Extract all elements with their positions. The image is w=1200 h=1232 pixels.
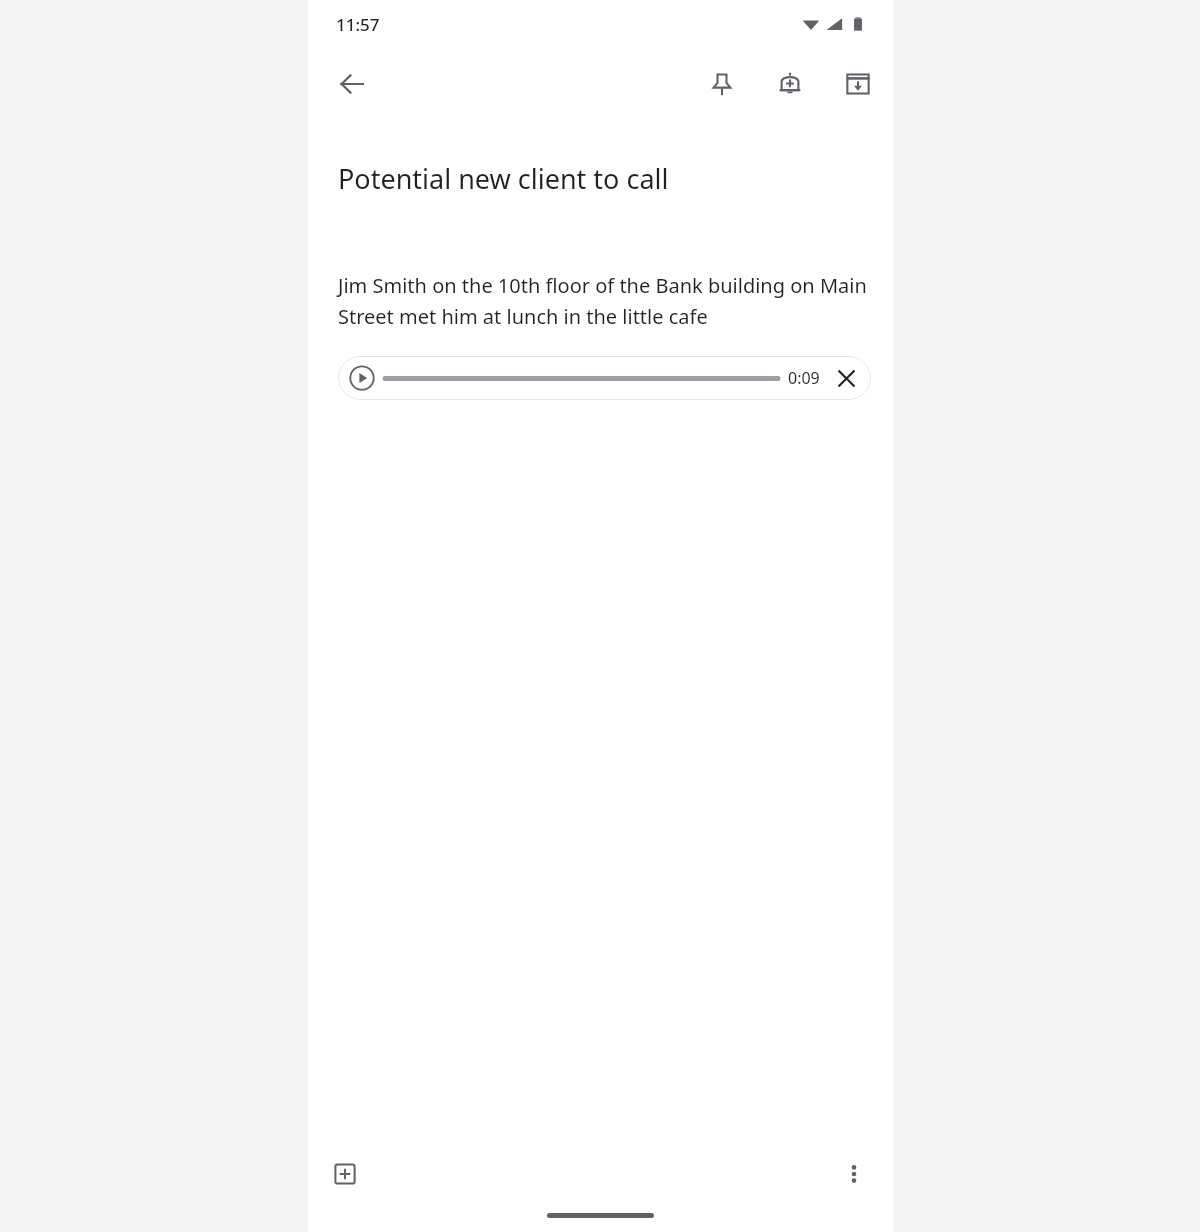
- button[interactable]: Archive: [835, 61, 881, 107]
- button[interactable]: Back: [328, 60, 376, 108]
- button[interactable]: Play recording: [338, 356, 871, 400]
- staticText: Jim Smith on the 10th floor of the Bank …: [338, 272, 871, 329]
- button[interactable]: Play recording: [347, 363, 377, 393]
- button[interactable]: Delete recording: [830, 362, 862, 394]
- staticText: 0:09: [788, 367, 820, 389]
- button[interactable]: More options: [831, 1151, 877, 1197]
- button[interactable]: Pin note: [699, 61, 745, 107]
- button[interactable]: Add reminder: [767, 61, 813, 107]
- staticText: 11:57: [336, 13, 380, 36]
- button[interactable]: Add: [322, 1151, 368, 1197]
- staticText: Potential new client to call: [338, 160, 669, 197]
